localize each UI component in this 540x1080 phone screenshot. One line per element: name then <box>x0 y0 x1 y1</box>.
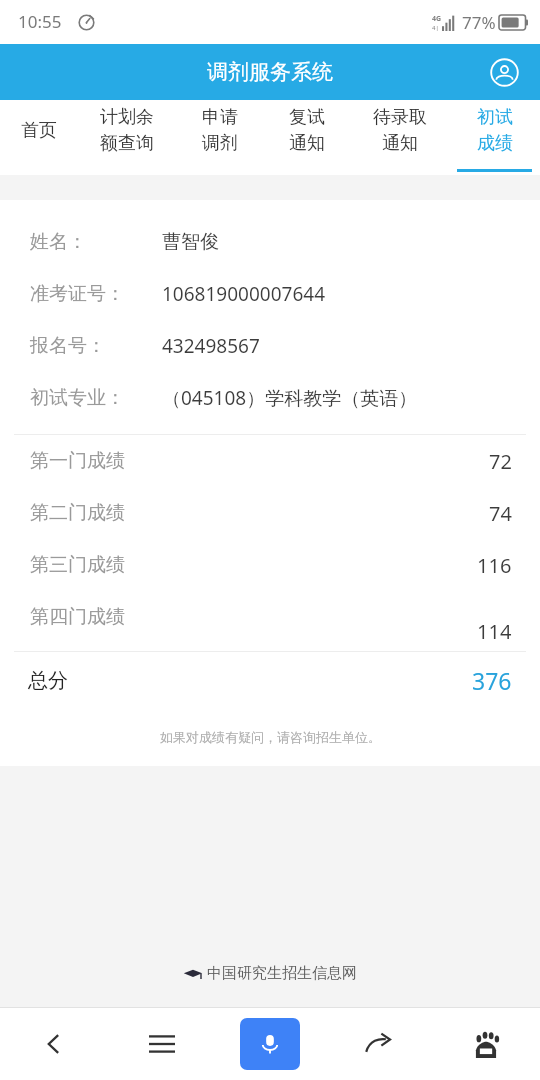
staticText: 106819000007644 <box>162 281 326 307</box>
button[interactable]: 计划余 <box>77 100 176 175</box>
staticText: 姓名： <box>30 230 87 254</box>
staticText: 114 <box>477 618 512 645</box>
button[interactable]: 初试 <box>449 100 540 175</box>
staticText: 通知 <box>382 132 418 155</box>
staticText: 第二门成绩 <box>30 501 125 525</box>
staticText: 如果对成绩有疑问，请咨询招生单位。 <box>160 729 381 745</box>
button[interactable]: 首页 <box>0 100 77 175</box>
staticText: 准考证号： <box>30 282 125 306</box>
button[interactable]: 第三门成绩 <box>0 539 540 591</box>
staticText: 376 <box>472 665 512 696</box>
staticText: 432498567 <box>162 333 260 359</box>
button[interactable]: Baidu <box>432 1008 540 1080</box>
button[interactable]: 第一门成绩 <box>0 435 540 487</box>
staticText: 曹智俊 <box>162 230 219 254</box>
staticText: 首页 <box>21 119 57 142</box>
button[interactable]: Voice search <box>240 1018 300 1070</box>
button[interactable]: 第二门成绩 <box>0 487 540 539</box>
staticText: 第一门成绩 <box>30 449 125 473</box>
staticText: 额查询 <box>100 132 154 155</box>
staticText: 通知 <box>289 132 325 155</box>
staticText: 第三门成绩 <box>30 553 125 577</box>
button[interactable]: Share <box>324 1008 432 1080</box>
staticText: 总分 <box>28 668 68 693</box>
button[interactable]: Account <box>484 52 524 92</box>
button[interactable]: Back <box>0 1008 108 1080</box>
staticText: 调剂服务系统 <box>207 59 333 85</box>
staticText: 4| <box>432 24 439 32</box>
staticText: 116 <box>477 552 512 579</box>
staticText: 计划余 <box>100 106 154 129</box>
staticText: 复试 <box>289 106 325 129</box>
staticText: 72 <box>489 448 512 475</box>
staticText: 调剂 <box>202 132 238 155</box>
staticText: 成绩 <box>477 132 513 155</box>
button[interactable]: Menu <box>108 1008 216 1080</box>
staticText: 初试 <box>477 106 513 129</box>
staticText: 4G <box>432 14 442 24</box>
staticText: 中国研究生招生信息网 <box>207 964 357 983</box>
button[interactable]: 第四门成绩 <box>0 591 540 643</box>
staticText: 报名号： <box>30 334 106 358</box>
button[interactable]: 申请 <box>176 100 263 175</box>
staticText: 初试专业： <box>30 386 125 410</box>
staticText: 10:55 <box>18 10 62 33</box>
button[interactable]: 复试 <box>263 100 350 175</box>
staticText: 77% <box>462 11 496 34</box>
staticText: 74 <box>489 500 512 527</box>
staticText: 申请 <box>202 106 238 129</box>
staticText: 第四门成绩 <box>30 605 125 629</box>
staticText: （045108）学科教学（英语） <box>162 385 418 411</box>
button[interactable]: 待录取 <box>350 100 449 175</box>
staticText: 待录取 <box>373 106 427 129</box>
